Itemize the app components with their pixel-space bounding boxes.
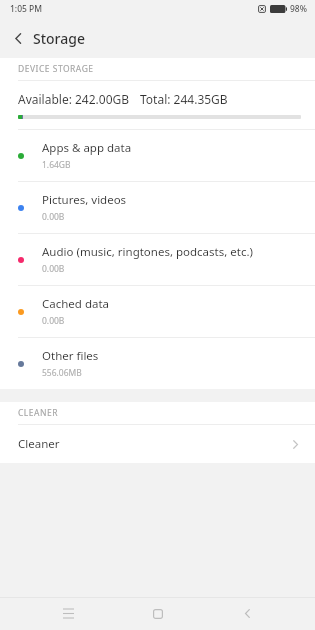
staticText: CLEANER bbox=[18, 407, 58, 419]
button[interactable]: Audio (music, ringtones, podcasts, etc.) bbox=[0, 234, 315, 285]
staticText: Total: 244.35GB bbox=[140, 91, 228, 107]
staticText: Storage bbox=[33, 29, 85, 48]
staticText: 1:05 PM bbox=[10, 3, 43, 15]
button[interactable]: Cached data bbox=[0, 286, 315, 337]
staticText: Other files bbox=[42, 348, 99, 364]
staticText: Cleaner bbox=[18, 436, 290, 452]
staticText: Pictures, videos bbox=[42, 192, 127, 208]
staticText: Audio (music, ringtones, podcasts, etc.) bbox=[42, 244, 253, 260]
button[interactable]: Pictures, videos bbox=[0, 182, 315, 233]
staticText: 0.00B bbox=[42, 211, 65, 223]
button[interactable]: Other files bbox=[0, 338, 315, 389]
staticText: Cached data bbox=[42, 296, 110, 312]
button[interactable]: Back bbox=[0, 20, 36, 56]
staticText: 556.06MB bbox=[42, 367, 82, 379]
button[interactable]: Back bbox=[225, 597, 269, 630]
staticText: 0.00B bbox=[42, 263, 65, 275]
button[interactable]: Apps & app data bbox=[0, 130, 315, 181]
staticText: 0.00B bbox=[42, 315, 65, 327]
button[interactable]: Recent apps bbox=[46, 597, 90, 630]
staticText: Available: 242.00GB bbox=[18, 91, 130, 107]
staticText: DEVICE STORAGE bbox=[18, 63, 94, 75]
button[interactable]: Home bbox=[136, 597, 180, 630]
staticText: Apps & app data bbox=[42, 140, 132, 156]
staticText: 98% bbox=[290, 3, 307, 15]
staticText: 1.64GB bbox=[42, 159, 71, 171]
button[interactable]: Available: 242.00GB bbox=[0, 81, 315, 129]
button[interactable]: Cleaner bbox=[0, 425, 315, 463]
